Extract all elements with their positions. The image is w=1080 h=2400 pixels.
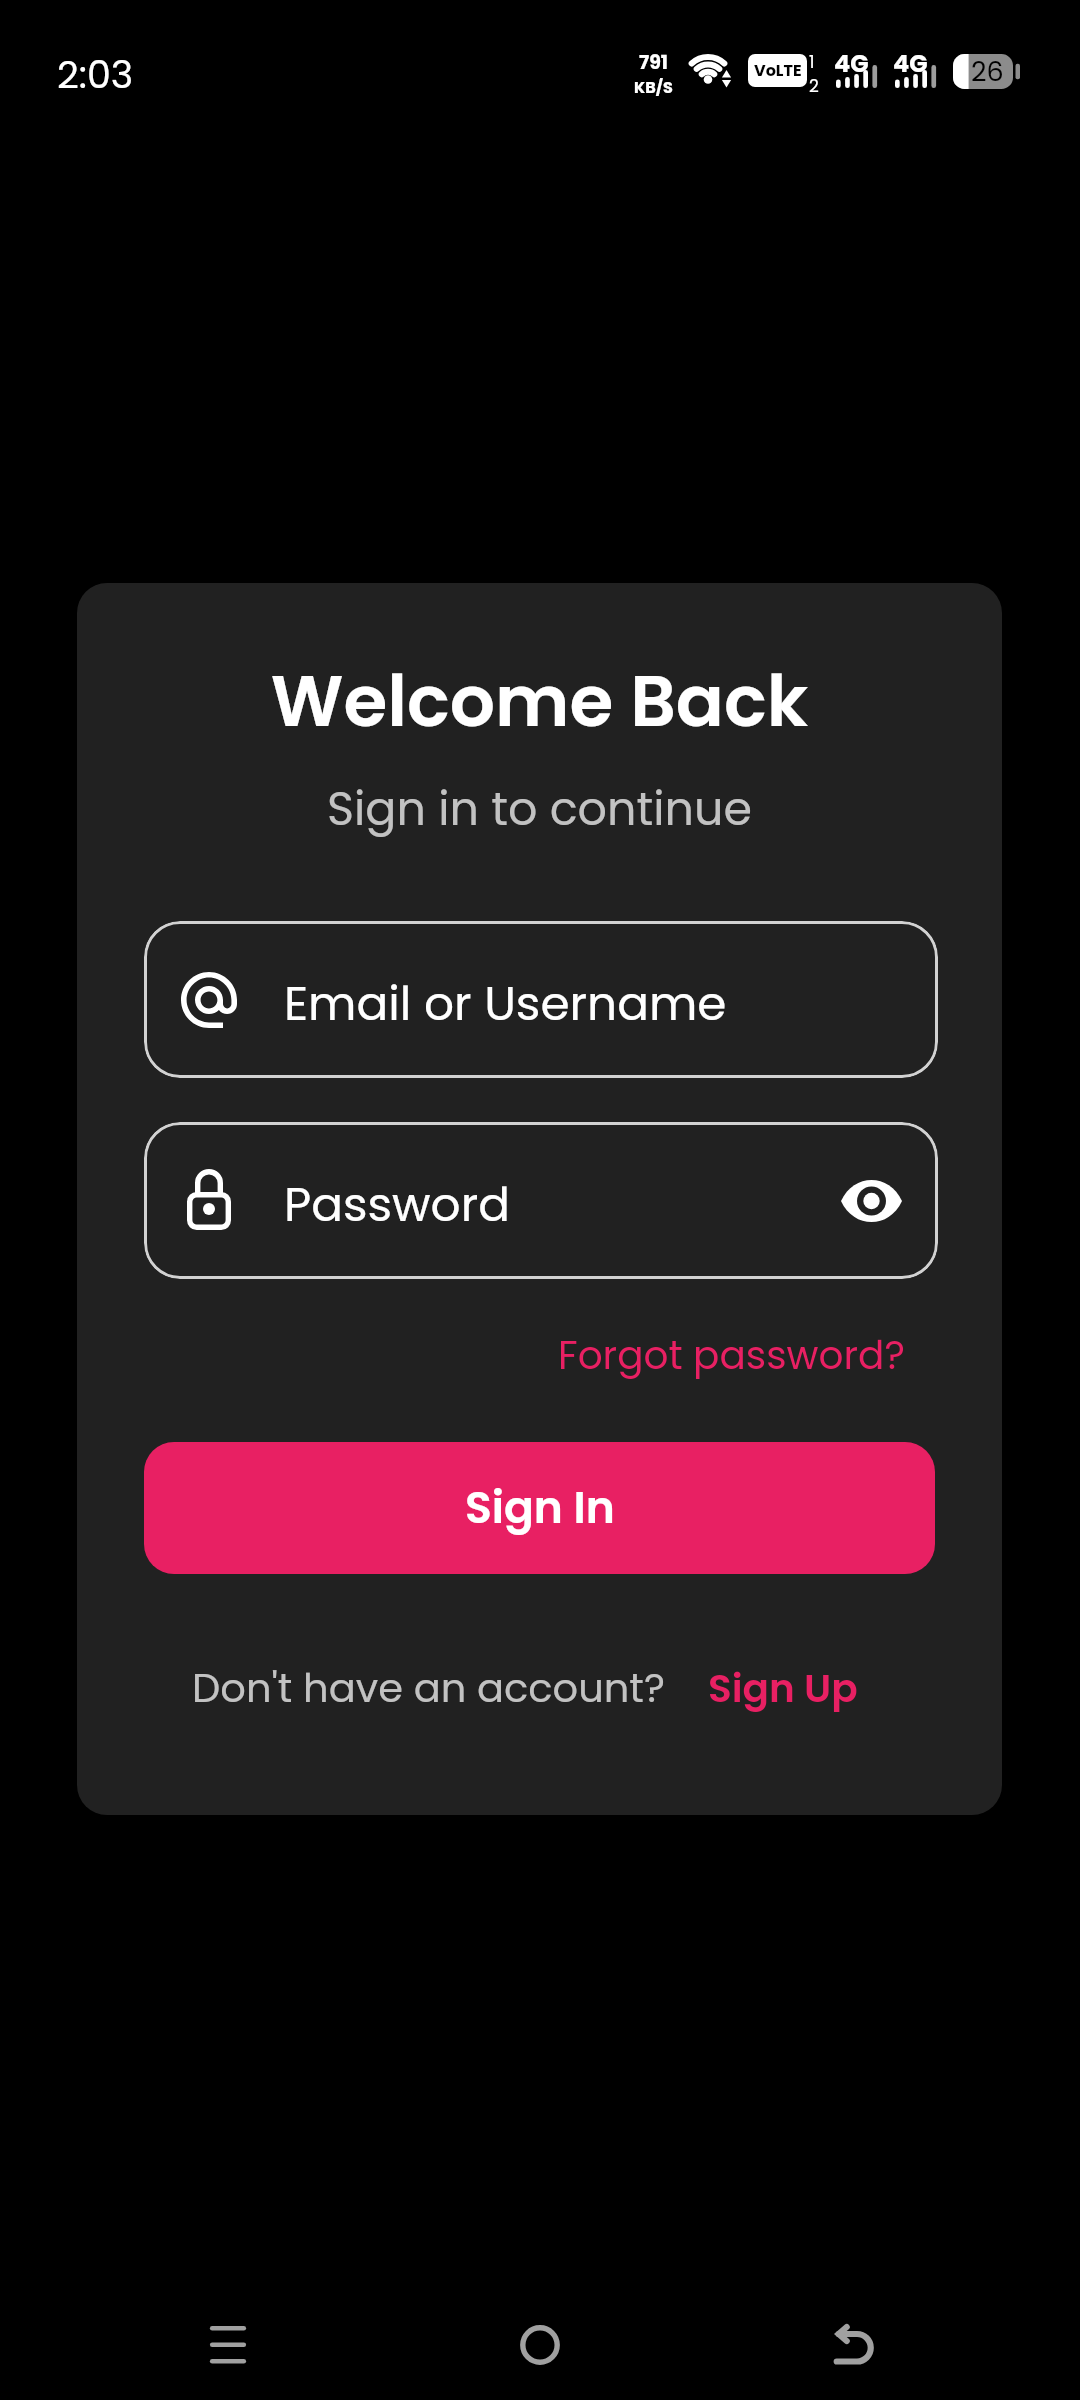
staticText: 26	[971, 53, 1004, 88]
staticText: VoLTE	[754, 59, 802, 81]
staticText: 1	[809, 50, 815, 74]
staticText: Password	[284, 1172, 510, 1238]
staticText: Email or Username	[284, 971, 727, 1037]
staticText: 4G	[834, 47, 869, 81]
staticText: Sign in to continue	[77, 777, 1002, 841]
staticText: Welcome Back	[77, 651, 1002, 750]
staticText: 2:03	[57, 48, 134, 101]
staticText: Sign Up	[708, 1661, 858, 1716]
staticText: Don't have an account?	[192, 1660, 665, 1716]
staticText: 2	[809, 74, 819, 98]
button[interactable]: Show password	[835, 1165, 907, 1237]
button[interactable]: Recent apps	[173, 2290, 283, 2400]
button[interactable]: Email or Username	[144, 921, 938, 1078]
staticText: 791	[639, 49, 668, 76]
button[interactable]: Home	[485, 2290, 595, 2400]
button[interactable]: Forgot password?	[550, 1320, 913, 1391]
staticText: Forgot password?	[558, 1328, 905, 1383]
staticText: 4G	[893, 47, 928, 81]
button[interactable]: Sign In	[144, 1442, 935, 1574]
button[interactable]: Back	[797, 2290, 907, 2400]
button[interactable]: Password	[144, 1122, 938, 1279]
staticText: KB/S	[634, 76, 673, 98]
button[interactable]: Sign Up	[708, 1661, 858, 1716]
staticText: Sign In	[465, 1477, 615, 1539]
